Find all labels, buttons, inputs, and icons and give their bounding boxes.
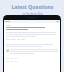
button[interactable]: Menu (4, 20, 60, 23)
button[interactable] (4, 44, 60, 47)
button[interactable] (4, 25, 60, 40)
staticText: on Stackoverflow (22, 12, 43, 15)
staticText: Latest Questions (11, 4, 54, 11)
other: Menu (56, 21, 59, 22)
button[interactable]: Accepted answer (4, 49, 60, 54)
other: Accepted answer (6, 49, 9, 52)
